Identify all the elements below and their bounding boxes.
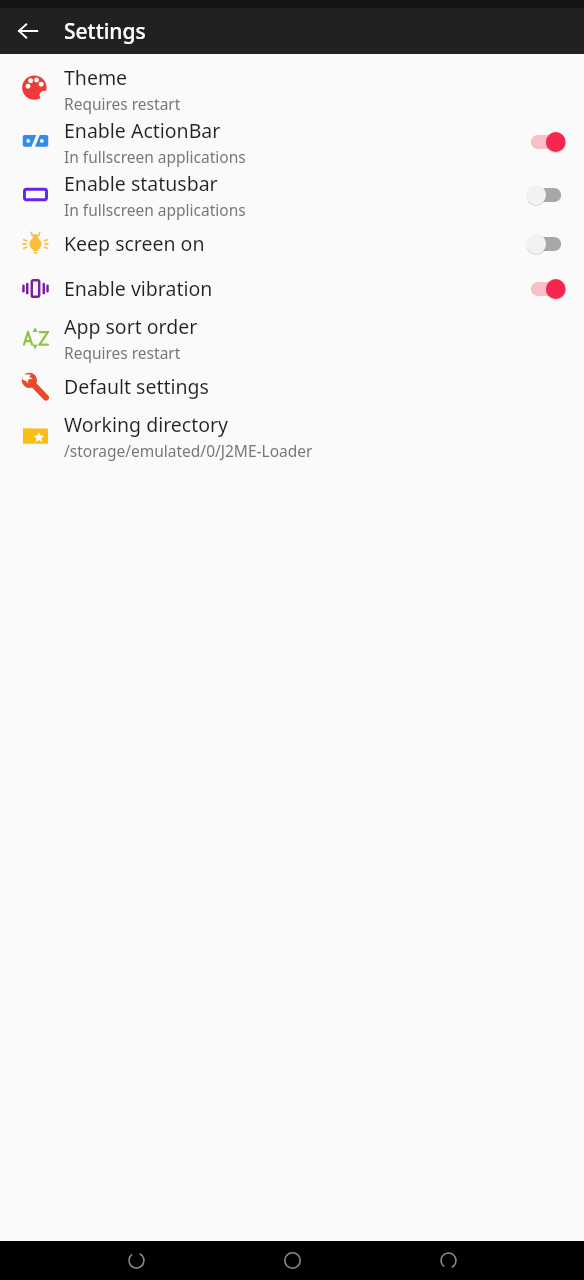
button[interactable]: Working directory: [0, 409, 584, 462]
button[interactable]: Enable vibration on: [508, 266, 584, 311]
staticText: Working directory: [64, 411, 229, 438]
button[interactable]: Theme: [0, 62, 584, 115]
button[interactable]: Keep screen on: [0, 221, 584, 266]
staticText: App sort order: [64, 313, 198, 340]
button[interactable]: Enable ActionBar on: [508, 115, 584, 168]
staticText: Requires restart: [64, 342, 181, 363]
staticText: Settings: [64, 17, 146, 46]
staticText: Keep screen on: [64, 230, 205, 257]
staticText: In fullscreen applications: [64, 199, 246, 220]
staticText: /storage/emulated/0/J2ME-Loader: [64, 440, 313, 461]
button[interactable]: Default settings: [0, 364, 584, 409]
staticText: Theme: [64, 64, 128, 91]
button[interactable]: Enable statusbar off: [508, 168, 584, 221]
button[interactable]: Enable vibration: [0, 266, 584, 311]
staticText: Enable ActionBar: [64, 117, 221, 144]
button[interactable]: Enable ActionBar: [0, 115, 584, 168]
staticText: Enable vibration: [64, 275, 213, 302]
button[interactable]: Enable statusbar: [0, 168, 584, 221]
staticText: Enable statusbar: [64, 170, 218, 197]
button[interactable]: App sort order: [0, 311, 584, 364]
button[interactable]: Back: [116, 1241, 156, 1280]
button[interactable]: Home: [272, 1241, 312, 1280]
button[interactable]: Back: [9, 12, 47, 50]
staticText: Requires restart: [64, 93, 181, 114]
button[interactable]: Keep screen on off: [508, 221, 584, 266]
staticText: In fullscreen applications: [64, 146, 246, 167]
staticText: Default settings: [64, 373, 209, 400]
button[interactable]: Recent apps: [428, 1241, 468, 1280]
